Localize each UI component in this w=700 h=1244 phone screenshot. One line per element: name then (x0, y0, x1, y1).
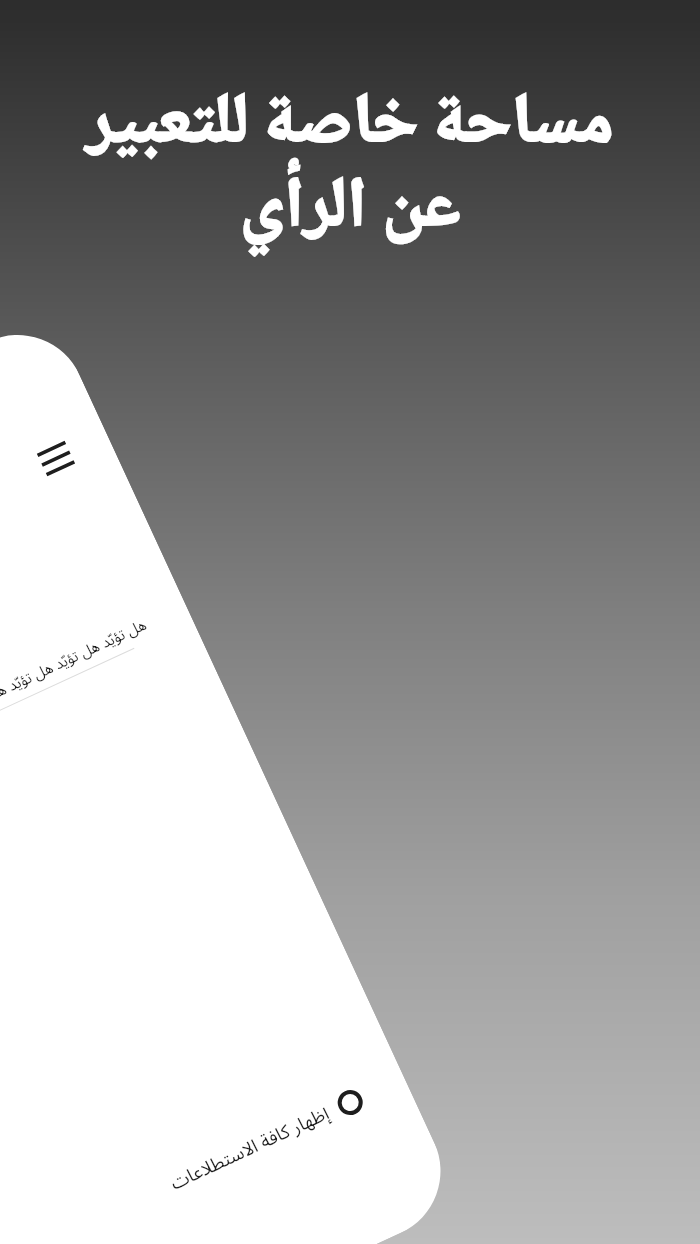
staticText: مساحة خاصة للتعبير عن الرأي (0, 67, 700, 271)
button[interactable]: Open navigation menu (21, 424, 90, 493)
button[interactable]: إظهار كافة الاستطلاعات (0, 1080, 370, 1244)
staticText: إظهار كافة الاستطلاعات (164, 1095, 337, 1203)
staticText: هل تؤيّد هل تؤيّد هل تؤيّد هل تؤيّد هل ت… (0, 609, 153, 766)
